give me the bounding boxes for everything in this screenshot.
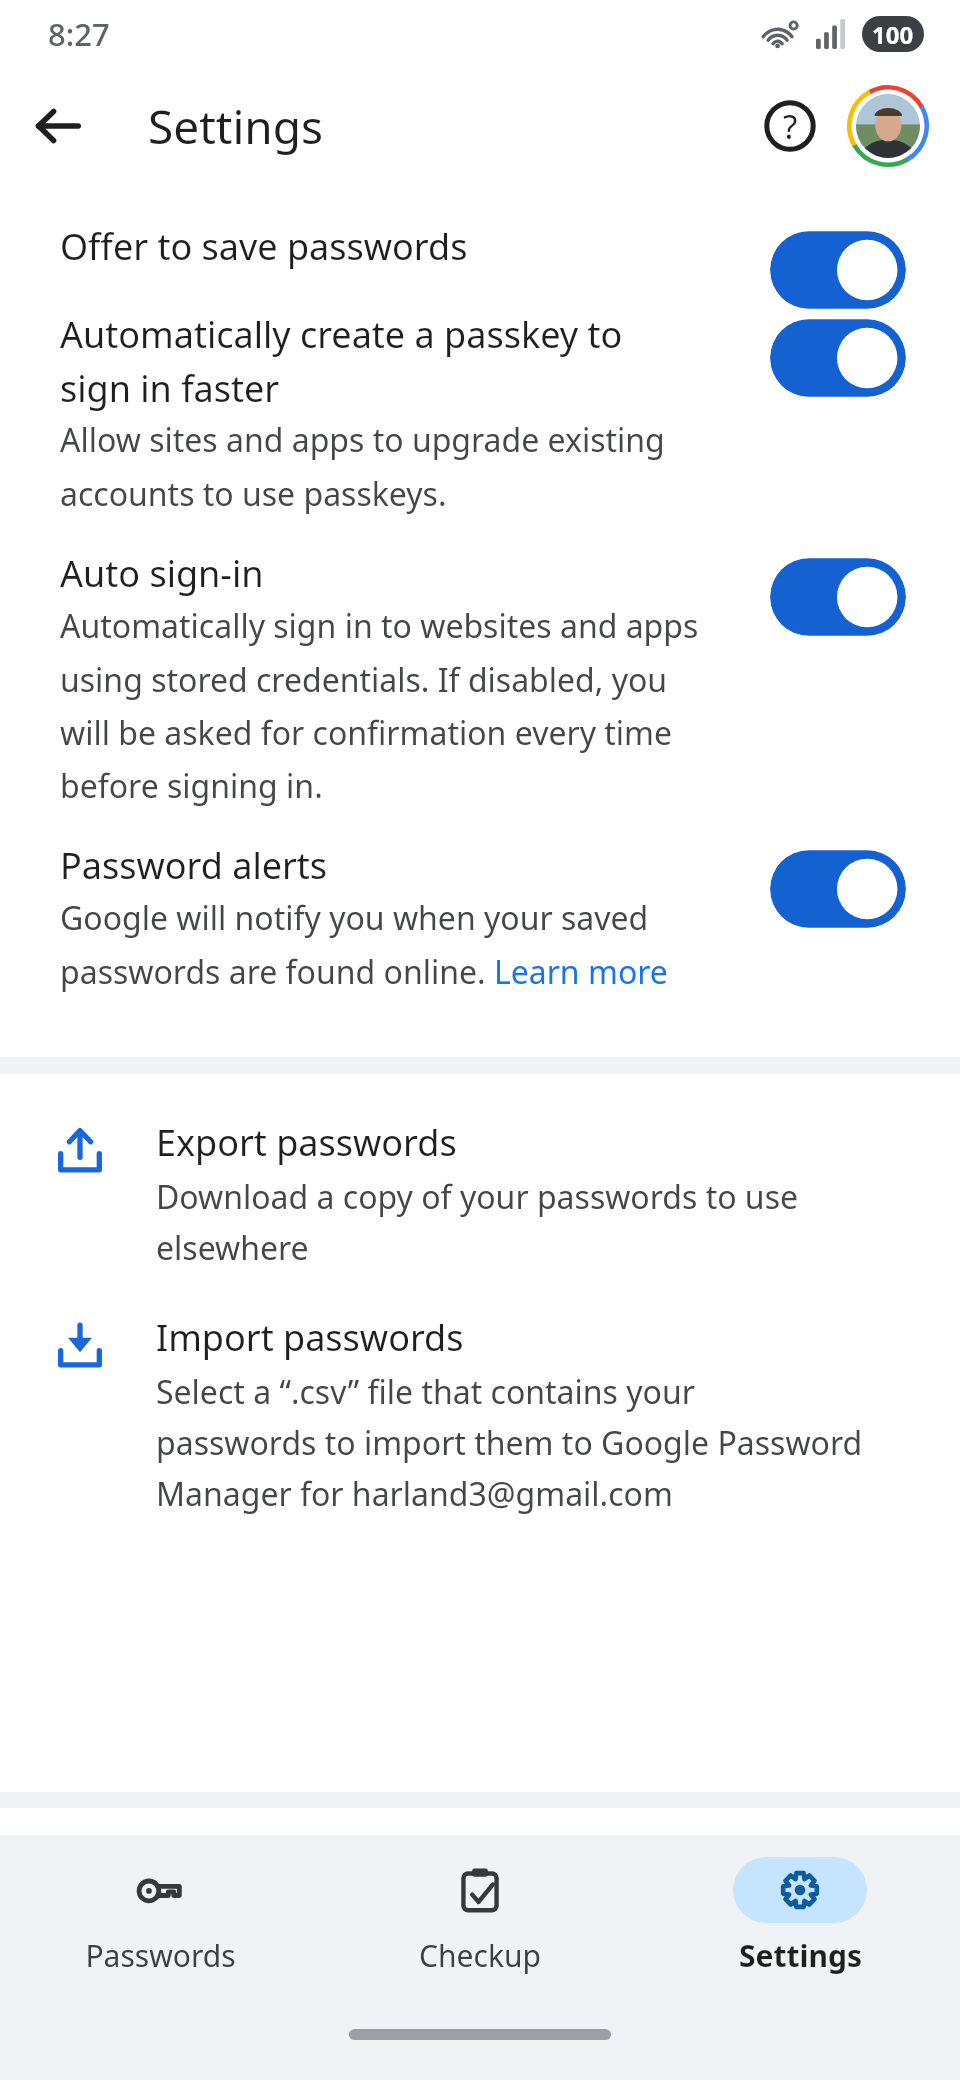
button[interactable]: Import passwords <box>0 1313 960 1515</box>
button[interactable]: Toggle Password alerts <box>770 849 906 929</box>
button[interactable]: Help <box>752 88 828 164</box>
staticText: Import passwords <box>156 1313 464 1362</box>
staticText: Automatically create a passkey to sign i… <box>60 310 623 412</box>
button[interactable]: Toggle Auto sign-in <box>770 557 906 637</box>
staticText: ? <box>783 104 798 149</box>
staticText: Download a copy of your passwords to use… <box>156 1175 799 1269</box>
staticText: Select a “.csv” file that contains your … <box>156 1370 863 1515</box>
button[interactable]: Back <box>20 88 96 164</box>
button[interactable]: Account <box>846 84 930 168</box>
staticText: Settings <box>148 95 324 158</box>
staticText: Offer to save passwords <box>60 222 468 271</box>
staticText: Allow sites and apps to upgrade existing… <box>60 418 665 515</box>
staticText: Automatically sign in to websites and ap… <box>60 604 699 807</box>
button[interactable]: Toggle Automatically create a passkey to… <box>770 318 906 398</box>
button[interactable]: Export passwords <box>0 1118 960 1269</box>
button[interactable]: Automatically create a passkey to sign i… <box>0 310 960 549</box>
button[interactable]: Settings <box>640 1835 960 1976</box>
button[interactable]: Toggle Offer to save passwords <box>770 230 906 310</box>
staticText: Auto sign-in <box>60 549 264 598</box>
staticText: Passwords <box>85 1935 236 1976</box>
staticText: Google will notify you when your saved p… <box>60 896 668 993</box>
button[interactable]: Auto sign-in <box>0 549 960 841</box>
staticText: Settings <box>739 1935 862 1976</box>
button[interactable]: Checkup <box>320 1835 640 1976</box>
button[interactable]: Offer to save passwords <box>0 222 960 310</box>
staticText: Checkup <box>419 1935 541 1976</box>
staticText: 8:27 <box>48 13 110 55</box>
staticText: 100 <box>872 18 914 51</box>
staticText: Export passwords <box>156 1118 457 1167</box>
button[interactable]: Passwords <box>0 1835 320 1976</box>
staticText: Password alerts <box>60 841 328 890</box>
button[interactable]: Password alerts <box>0 841 960 1027</box>
